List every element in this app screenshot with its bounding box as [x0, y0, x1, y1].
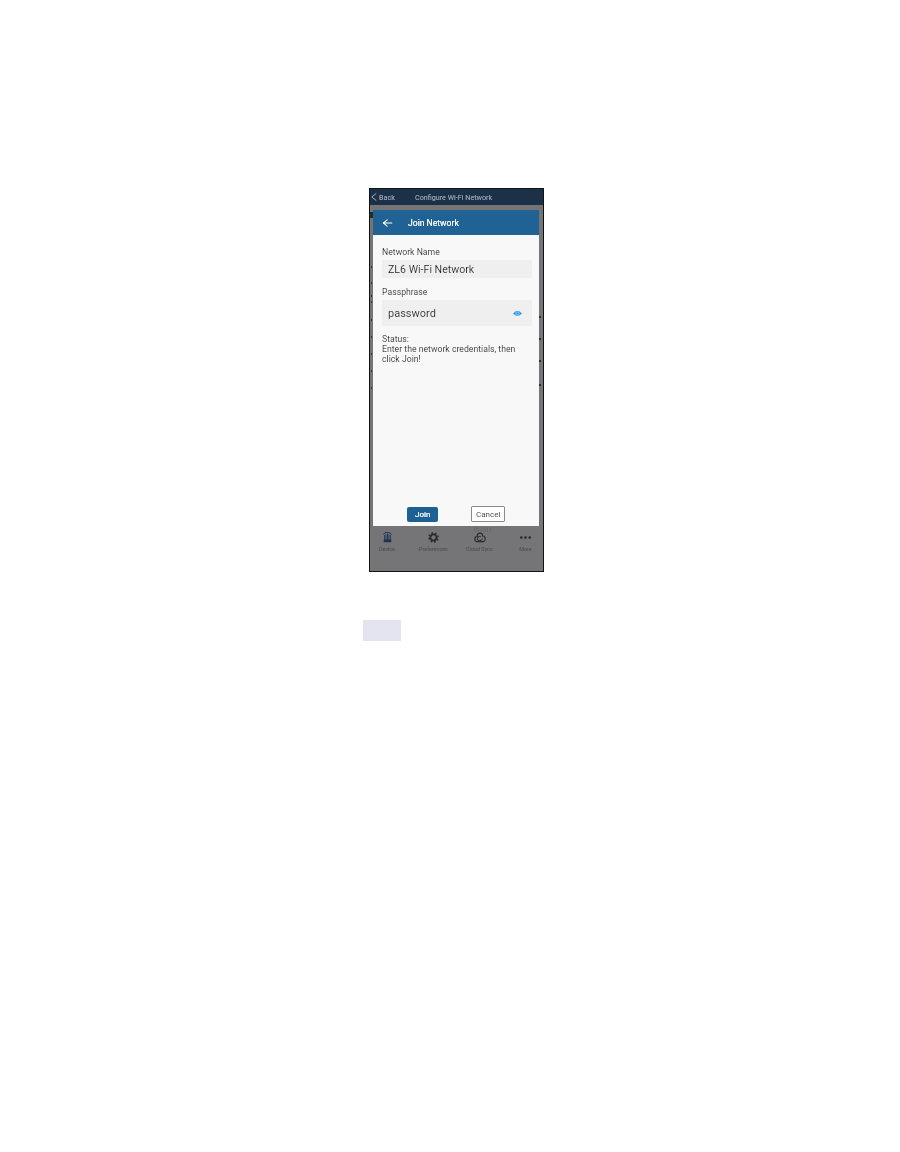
staticText: Configure Wi-Fi Network: [415, 193, 493, 201]
staticText: Back: [379, 193, 395, 201]
button[interactable]: Back: [380, 216, 395, 230]
staticText: Network Name: [382, 247, 440, 257]
staticText: More: [519, 546, 532, 552]
staticText: Preferences: [419, 546, 448, 552]
button[interactable]: More: [505, 531, 545, 553]
staticText: Enter the network credentials, then: [382, 344, 516, 354]
staticText: password: [388, 307, 436, 320]
button[interactable]: ZL6 Wi-Fi Network: [382, 260, 532, 278]
button[interactable]: Preferences: [413, 531, 453, 553]
staticText: Join: [415, 510, 431, 519]
button[interactable]: Device: [367, 531, 407, 553]
button[interactable]: Back: [370, 189, 395, 205]
button[interactable]: Cloud Sync: [459, 531, 499, 553]
staticText: Cloud Sync: [466, 546, 493, 552]
staticText: Join Network: [408, 218, 459, 228]
staticText: Device: [379, 546, 395, 552]
staticText: ZL6 Wi-Fi Network: [388, 263, 475, 275]
staticText: click Join!: [382, 354, 421, 364]
staticText: Passphrase: [382, 287, 428, 297]
staticText: Status:: [382, 334, 409, 344]
button[interactable]: Join: [407, 507, 438, 522]
button[interactable]: password: [382, 300, 532, 326]
button[interactable]: Show passphrase: [508, 304, 532, 323]
button[interactable]: Cancel: [471, 506, 505, 522]
staticText: Cancel: [476, 510, 501, 519]
